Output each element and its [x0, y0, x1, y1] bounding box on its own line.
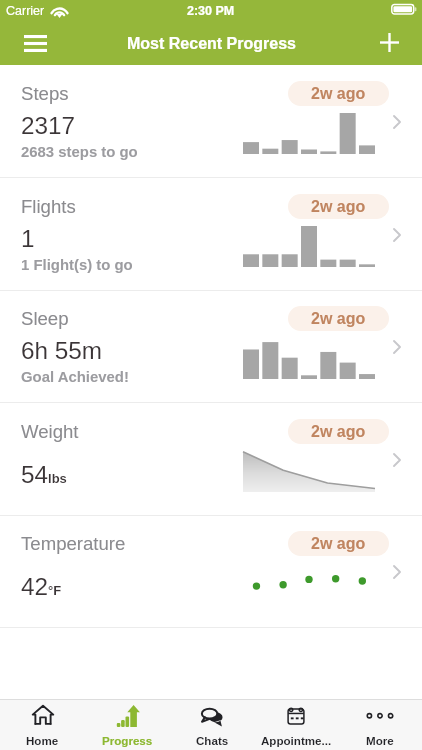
staticText: Weight — [21, 421, 79, 442]
staticText: 1 Flight(s) to go — [21, 257, 133, 274]
staticText: 1 — [21, 225, 35, 252]
button[interactable]: Home — [0, 700, 85, 750]
button[interactable]: 2w ago — [288, 81, 389, 106]
button[interactable]: Temperature — [0, 515, 422, 627]
other: Open detail — [386, 561, 408, 583]
staticText: Progress — [102, 734, 153, 747]
other: Open detail — [386, 111, 408, 133]
button[interactable]: Appointme... — [254, 700, 338, 750]
staticText: 2w ago — [311, 85, 366, 103]
staticText: 54lbs — [21, 461, 67, 488]
staticText: 2w ago — [311, 535, 366, 553]
staticText: 6h 55m — [21, 337, 103, 364]
staticText: Flights — [21, 196, 76, 217]
button[interactable]: Weight — [0, 403, 422, 515]
staticText: Steps — [21, 83, 69, 104]
staticText: 2w ago — [311, 198, 366, 216]
staticText: Chats — [196, 734, 229, 747]
button[interactable]: 2w ago — [288, 531, 389, 556]
staticText: Sleep — [21, 308, 69, 329]
button[interactable]: 2w ago — [288, 419, 389, 444]
staticText: Most Recent Progress — [127, 35, 296, 53]
staticText: More — [366, 734, 394, 747]
staticText: Temperature — [21, 533, 126, 554]
button[interactable]: 2w ago — [288, 194, 389, 219]
staticText: 2683 steps to go — [21, 144, 138, 161]
button[interactable]: More — [338, 700, 422, 750]
button[interactable]: 2w ago — [288, 306, 389, 331]
staticText: 2:30 PM — [187, 4, 235, 18]
staticText: 2317 — [21, 112, 76, 139]
other: Open detail — [386, 336, 408, 358]
staticText: Home — [26, 734, 59, 747]
staticText: 2w ago — [311, 423, 366, 441]
staticText: 2w ago — [311, 310, 366, 328]
other: Open detail — [386, 449, 408, 471]
button[interactable]: Steps — [0, 65, 422, 177]
staticText: Carrier — [6, 4, 45, 18]
button[interactable]: Sleep — [0, 290, 422, 402]
staticText: Goal Achieved! — [21, 369, 129, 386]
other: Open detail — [386, 224, 408, 246]
button[interactable]: Menu — [13, 22, 57, 65]
staticText: 42°F — [21, 573, 62, 600]
button[interactable]: Add — [368, 22, 412, 65]
button[interactable]: Flights — [0, 178, 422, 290]
staticText: Appointme... — [261, 734, 332, 747]
button[interactable]: Chats — [170, 700, 254, 750]
button[interactable]: Progress — [85, 700, 170, 750]
